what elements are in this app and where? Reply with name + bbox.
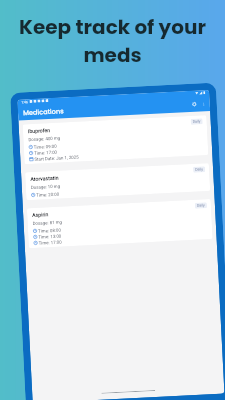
button[interactable]: Ibuprofen [23,115,208,164]
staticText: Dosage: 10 mg [31,184,61,190]
staticText: Medications [23,106,64,117]
button[interactable]: Notifications [188,98,199,109]
button[interactable]: Aspirin [27,199,213,248]
staticText: Aspirin [32,211,49,218]
staticText: Keep track of your [19,13,206,41]
staticText: 1:46 [21,100,29,104]
staticText: Dosage: 81 mg [32,219,63,226]
staticText: Ibuprofen [28,127,51,134]
button[interactable]: Atorvastatin [25,163,210,200]
staticText: Daily [195,167,203,172]
button[interactable]: Daily [193,166,205,173]
button[interactable]: Daily [190,118,203,125]
staticText: Daily [197,203,205,208]
staticText: Daily [193,119,201,124]
button[interactable]: More options [199,99,208,108]
staticText: Time: 17:00 [38,240,62,246]
staticText: Time: 13:00 [38,234,61,240]
staticText: meds [83,41,142,69]
button[interactable]: Daily [195,202,207,209]
staticText: Dosage: 400 mg [28,135,60,142]
staticText: Start Date: Jan 1, 2025 [34,155,79,162]
staticText: Time: 09:00 [34,144,57,150]
staticText: Time: 20:00 [36,192,59,198]
staticText: Time: 08:00 [38,228,61,234]
staticText: Time: 17:00 [34,150,57,156]
staticText: Atorvastatin [30,175,59,182]
